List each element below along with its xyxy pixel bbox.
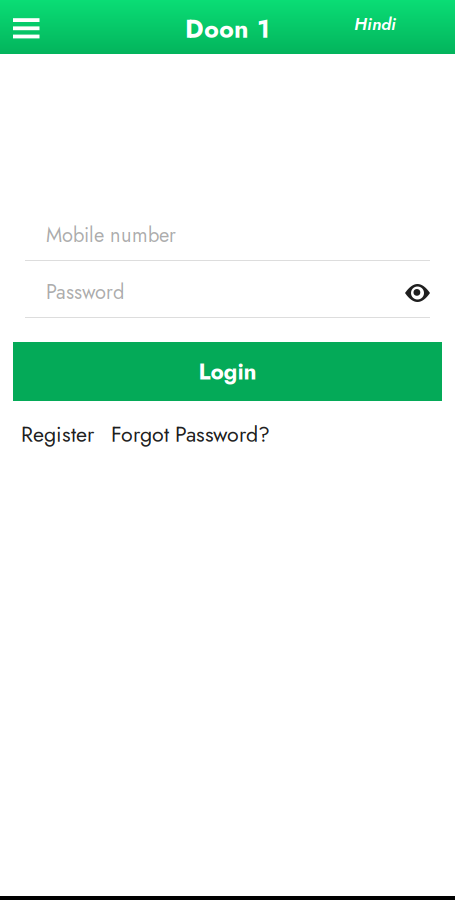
button[interactable]: Mobile number [25, 220, 430, 250]
staticText: Forgot Password? [111, 419, 270, 450]
staticText: Doon 1 [185, 11, 270, 47]
button[interactable]: Hindi [340, 0, 455, 56]
button[interactable]: Login [13, 342, 442, 401]
staticText: Hindi [354, 11, 396, 36]
staticText: Login [198, 355, 256, 388]
staticText: Mobile number [46, 220, 176, 249]
button[interactable]: Password [25, 277, 405, 307]
staticText: Register [21, 419, 94, 450]
button[interactable]: Menu [0, 0, 55, 54]
button[interactable]: Forgot Password? [111, 413, 270, 456]
staticText: Password [46, 277, 124, 306]
button[interactable]: Register [21, 413, 94, 456]
button[interactable]: Show password [405, 276, 430, 307]
